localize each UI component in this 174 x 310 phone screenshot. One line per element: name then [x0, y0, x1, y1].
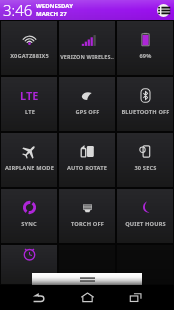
button[interactable]: Home: [70, 285, 104, 310]
staticText: X0GATZ88IX5: [10, 52, 49, 60]
staticText: TORCH OFF: [71, 220, 104, 228]
button[interactable]: BLUETOOTH OFF: [117, 77, 173, 131]
button[interactable]: AIRPLANE MODE: [1, 133, 57, 187]
staticText: AIRPLANE MODE: [5, 164, 54, 172]
button[interactable]: Settings: [157, 4, 170, 17]
button[interactable]: X0GATZ88IX5: [1, 21, 57, 75]
button[interactable]: Back: [21, 285, 55, 310]
staticText: SYNC: [21, 220, 37, 228]
button[interactable]: Alarm: [117, 245, 173, 284]
staticText: QUIET HOURS: [125, 220, 166, 228]
staticText: BLUETOOTH OFF: [121, 108, 170, 116]
button[interactable]: QUIET HOURS: [117, 189, 173, 243]
button[interactable]: 30 SECS: [117, 133, 173, 187]
staticText: VERIZON WIRELES..: [60, 53, 114, 60]
button[interactable]: Recents: [118, 285, 152, 310]
button[interactable]: GPS OFF: [59, 77, 115, 131]
button[interactable]: TORCH OFF: [59, 189, 115, 243]
button[interactable]: Drag handle: [32, 273, 142, 285]
staticText: MARCH 27: [36, 10, 67, 18]
button[interactable]: SYNC: [1, 189, 57, 243]
button[interactable]: Alarm: [59, 245, 115, 284]
button[interactable]: AUTO ROTATE: [59, 133, 115, 187]
staticText: LTE: [20, 88, 39, 103]
staticText: 30 SECS: [134, 164, 157, 172]
staticText: LTE: [25, 108, 35, 116]
button[interactable]: 69%: [117, 21, 173, 75]
staticText: AUTO ROTATE: [67, 164, 107, 172]
button[interactable]: Alarm: [1, 245, 57, 284]
staticText: GPS OFF: [75, 108, 100, 116]
staticText: 3:46: [3, 0, 33, 20]
staticText: WEDNESDAY: [36, 2, 73, 10]
button[interactable]: LTE: [1, 77, 57, 131]
button[interactable]: VERIZON WIRELES..: [59, 21, 115, 75]
staticText: 69%: [139, 52, 152, 60]
